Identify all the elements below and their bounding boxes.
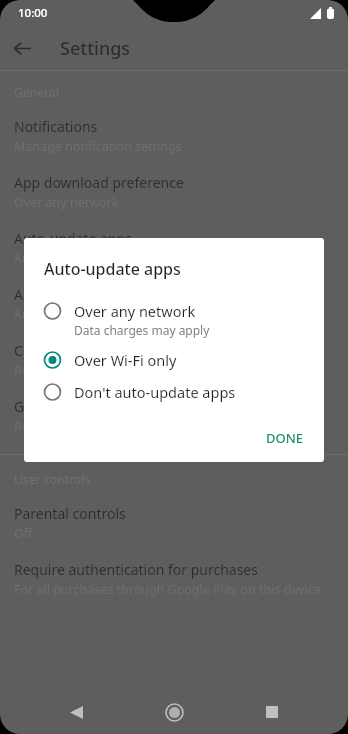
staticText: For all purchases through Google Play on… (14, 581, 321, 598)
button[interactable]: Clear local search history (0, 332, 348, 388)
staticText: User controls (14, 471, 91, 487)
button[interactable]: Home (152, 690, 196, 734)
staticText: Parental controls (14, 504, 126, 523)
staticText: Over any network (14, 194, 119, 211)
staticText: Require authentication for purchases (14, 560, 258, 579)
staticText: Remove the searches you have performed (14, 362, 262, 379)
staticText: Don't auto-update apps (74, 382, 236, 402)
button[interactable]: Don't auto-update apps (24, 376, 324, 408)
staticText: Data charges may apply (74, 322, 210, 338)
button[interactable]: Notifications (0, 108, 348, 164)
staticText: Auto-play videos (14, 285, 123, 304)
button[interactable]: Auto-update apps (0, 220, 348, 276)
staticText: Remove the apps from your wish lists (14, 418, 234, 435)
button[interactable]: Require authentication for purchases (0, 551, 348, 607)
staticText: Settings (60, 36, 131, 61)
staticText: Over any network (74, 301, 196, 321)
button[interactable]: Recents (250, 690, 294, 734)
button[interactable]: Over any network (24, 295, 324, 344)
button[interactable]: DONE (254, 420, 316, 456)
staticText: Clear local search history (14, 341, 178, 360)
staticText: Notifications (14, 117, 98, 136)
staticText: Auto-update apps (44, 258, 181, 280)
button[interactable]: Over Wi-Fi only (24, 344, 324, 376)
staticText: App download preference (14, 173, 184, 192)
button[interactable]: Back (0, 26, 44, 70)
staticText: General (14, 84, 59, 100)
staticText: Off (14, 525, 33, 542)
staticText: Auto-update apps over Wi-Fi only (14, 250, 209, 267)
staticText: Google Play Instant (14, 397, 143, 416)
staticText: 10:00 (18, 5, 48, 21)
button[interactable]: App download preference (0, 164, 348, 220)
staticText: DONE (266, 429, 304, 447)
button[interactable]: Google Play Instant (0, 388, 348, 444)
button[interactable]: Back (54, 690, 98, 734)
staticText: Auto-play videos over Wi-Fi only (14, 306, 201, 323)
staticText: Manage notification settings (14, 138, 182, 155)
button[interactable]: Parental controls (0, 495, 348, 551)
button[interactable]: Auto-play videos (0, 276, 348, 332)
staticText: Over Wi-Fi only (74, 350, 177, 370)
staticText: Auto-update apps (14, 229, 132, 248)
